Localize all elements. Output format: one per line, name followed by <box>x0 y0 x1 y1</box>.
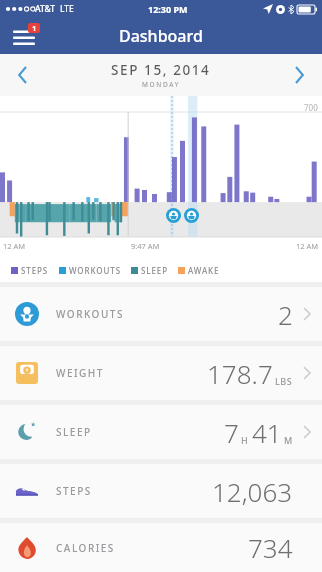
staticText: WORKOUTS <box>69 265 121 276</box>
staticText: AT&T <box>35 3 56 15</box>
staticText: SEP 15, 2014 <box>111 61 211 79</box>
button[interactable]: Previous day <box>0 54 46 96</box>
button[interactable]: Next day <box>276 54 322 96</box>
staticText: LBS <box>275 375 293 387</box>
staticText: 734 <box>248 530 293 565</box>
staticText: M <box>284 434 293 446</box>
staticText: 2 <box>278 297 293 332</box>
staticText: 41 <box>252 415 282 450</box>
staticText: SLEEP <box>56 425 92 439</box>
staticText: 12,063 <box>212 474 293 509</box>
staticText: 178.7 <box>207 356 273 391</box>
staticText: 12:30 PM <box>148 3 188 15</box>
staticText: WORKOUTS <box>56 307 124 321</box>
button[interactable]: STEPS <box>0 464 322 518</box>
button[interactable]: WEIGHT <box>0 346 322 400</box>
button[interactable]: Menu <box>7 21 41 51</box>
staticText: 9:47 AM <box>131 241 160 251</box>
staticText: STEPS <box>21 265 49 276</box>
button[interactable]: SLEEP <box>0 405 322 459</box>
staticText: 7 <box>224 415 239 450</box>
staticText: MONDAY <box>142 80 181 89</box>
staticText: STEPS <box>56 484 92 498</box>
staticText: CALORIES <box>56 541 115 555</box>
staticText: H <box>241 434 248 446</box>
staticText: AWAKE <box>188 265 220 276</box>
staticText: WEIGHT <box>56 366 104 380</box>
button[interactable]: CALORIES <box>0 523 322 572</box>
staticText: Dashboard <box>119 25 203 47</box>
staticText: 1 <box>32 23 37 33</box>
staticText: SLEEP <box>141 265 168 276</box>
staticText: 12 AM <box>296 241 319 251</box>
staticText: 12 AM <box>3 241 26 251</box>
staticText: LTE <box>60 3 74 15</box>
button[interactable]: WORKOUTS <box>0 287 322 341</box>
staticText: 700 <box>304 102 318 113</box>
